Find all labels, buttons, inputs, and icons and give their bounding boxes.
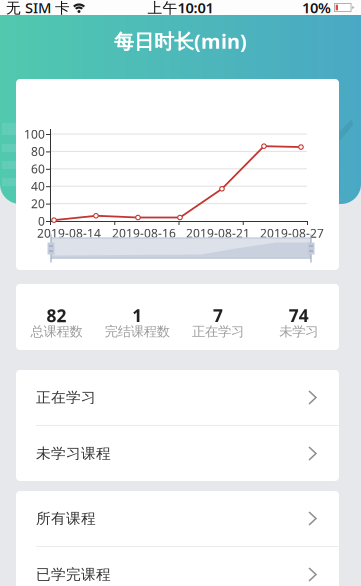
staticText: 0 — [38, 213, 45, 229]
staticText: 10% — [302, 0, 331, 17]
staticText: 60 — [31, 161, 45, 177]
staticText: 100 — [24, 126, 45, 142]
button[interactable]: 正在学习 — [16, 370, 339, 425]
staticText: 2019-08-21 — [186, 225, 250, 241]
staticText: 80 — [31, 143, 45, 159]
staticText: 完结课程数 — [105, 323, 170, 340]
button[interactable]: 所有课程 — [16, 491, 339, 546]
staticText: 总课程数 — [30, 323, 82, 340]
button[interactable]: 未学习课程 — [16, 426, 339, 481]
staticText: 7 — [213, 304, 223, 327]
staticText: 未学习课程 — [36, 444, 111, 462]
staticText: 20 — [31, 196, 45, 211]
staticText: 82 — [46, 304, 66, 327]
staticText: 正在学习 — [192, 323, 244, 340]
staticText: 未学习 — [279, 323, 318, 340]
staticText: 1 — [132, 304, 142, 327]
staticText: 上午10:01 — [147, 0, 213, 17]
staticText: 74 — [289, 304, 309, 327]
button[interactable]: 已学完课程 — [16, 547, 339, 586]
staticText: 2019-08-27 — [260, 225, 324, 241]
staticText: 所有课程 — [36, 509, 96, 527]
staticText: 2019-08-14 — [37, 225, 101, 241]
staticText: 40 — [31, 178, 45, 194]
staticText: 已学完课程 — [36, 565, 111, 583]
staticText: 每日时长(min) — [114, 28, 247, 54]
staticText: 无 SIM 卡 — [6, 0, 70, 17]
staticText: 正在学习 — [36, 388, 96, 406]
staticText: 2019-08-16 — [112, 225, 176, 241]
